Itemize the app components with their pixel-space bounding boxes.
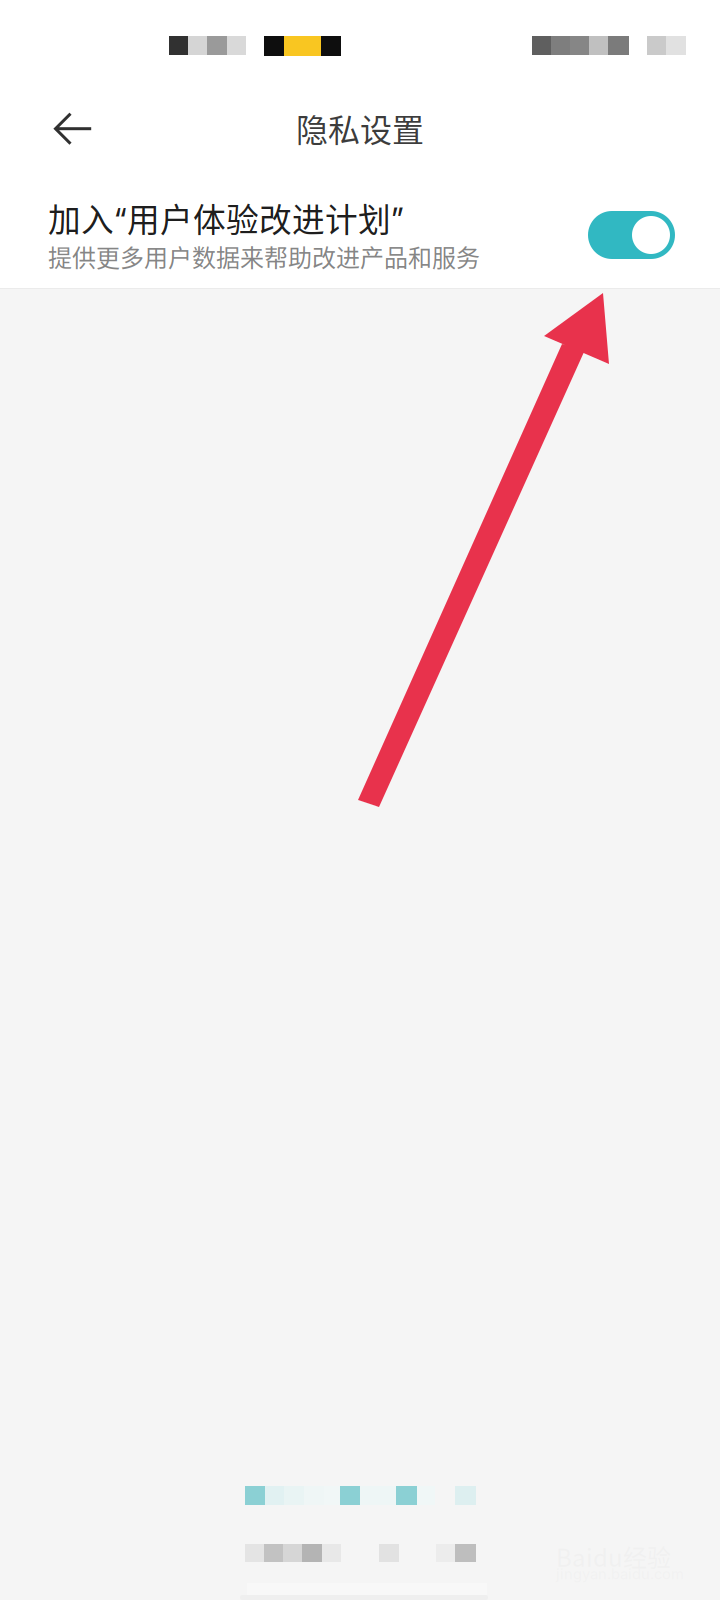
staticText: 用户体验改进计划 — [127, 194, 391, 241]
button[interactable]: 加入用户体验改进计划 — [0, 176, 720, 288]
staticText: ” — [391, 200, 404, 240]
staticText: 加入 — [48, 194, 114, 241]
button[interactable]: 返回 — [24, 81, 120, 177]
staticText: 提供更多用户数据来帮助改进产品和服务 — [48, 239, 480, 274]
staticText: 隐私设置 — [296, 105, 424, 151]
staticText: “ — [114, 200, 127, 240]
